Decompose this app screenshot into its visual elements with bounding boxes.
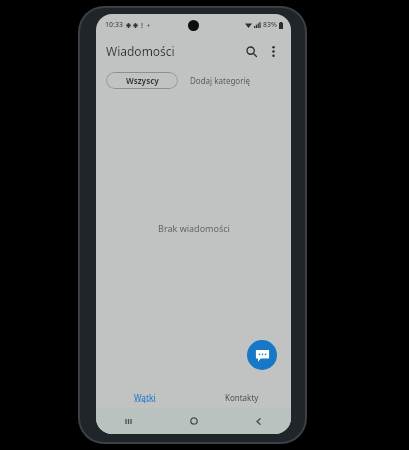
staticText: Kontakty <box>225 392 259 403</box>
staticText: Brak wiadomości <box>158 222 230 234</box>
staticText: Wątki <box>134 392 156 403</box>
button[interactable]: Nowa wiadomość <box>247 340 277 370</box>
staticText: Dodaj kategorię <box>190 75 251 86</box>
button[interactable]: Ostatnie aplikacje <box>96 408 161 434</box>
button[interactable]: Ekran główny <box>161 408 226 434</box>
staticText: 83% <box>263 20 277 30</box>
button[interactable]: Wątki <box>96 386 193 408</box>
staticText: 10:33 <box>105 20 123 30</box>
button[interactable]: Wstecz <box>226 408 291 434</box>
button[interactable]: Wszyscy <box>106 72 178 89</box>
button[interactable]: Kontakty <box>193 386 291 408</box>
staticText: Wiadomości <box>106 43 175 59</box>
staticText: Wszyscy <box>126 75 159 86</box>
button[interactable]: Szukaj <box>241 41 261 61</box>
button[interactable]: Więcej opcji <box>263 41 283 61</box>
button[interactable]: Dodaj kategorię <box>190 72 251 89</box>
